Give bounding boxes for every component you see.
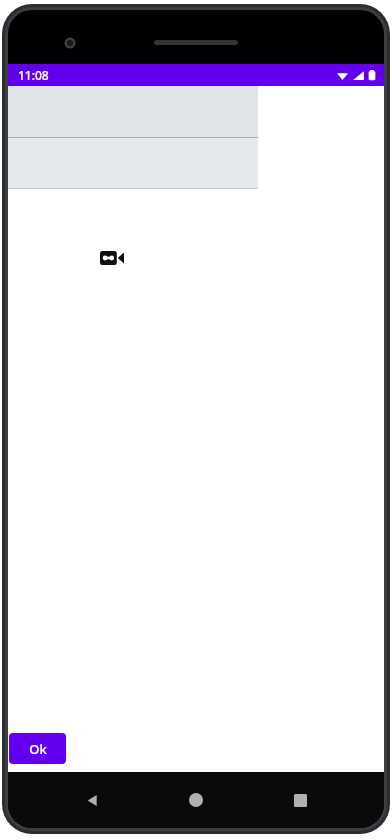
button[interactable]: Video (100, 251, 124, 265)
button[interactable]: Back (70, 778, 114, 822)
button[interactable]: Home (174, 778, 218, 822)
button[interactable]: Recent apps (278, 778, 322, 822)
button[interactable]: Ok (9, 733, 66, 764)
staticText: Ok (29, 740, 47, 758)
staticText: 11:08 (18, 67, 49, 83)
